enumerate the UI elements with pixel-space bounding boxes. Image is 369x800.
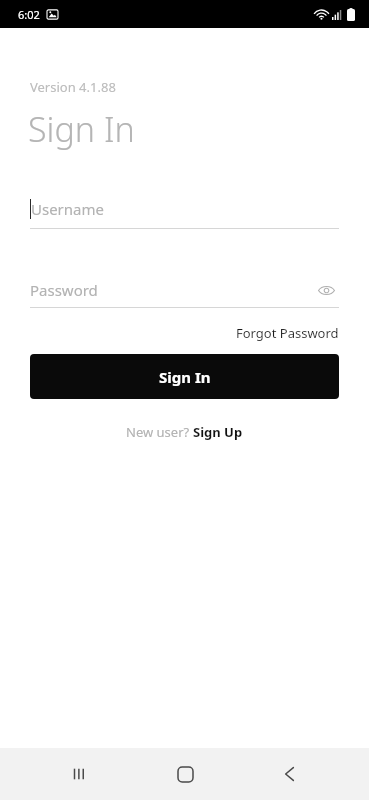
staticText: Username bbox=[31, 199, 104, 219]
staticText: 6:02 bbox=[18, 7, 40, 22]
button[interactable]: Show password bbox=[313, 277, 339, 303]
staticText: New user? bbox=[126, 423, 193, 441]
button[interactable]: Recent apps bbox=[56, 750, 104, 798]
button[interactable]: Sign In bbox=[30, 354, 339, 399]
button[interactable]: Sign Up bbox=[193, 423, 243, 441]
button[interactable]: Password bbox=[30, 273, 339, 307]
staticText: Password bbox=[30, 280, 98, 300]
button[interactable]: Username bbox=[30, 190, 339, 228]
staticText: Forgot Password bbox=[236, 324, 339, 342]
staticText: Version 4.1.88 bbox=[30, 78, 116, 96]
staticText: Sign In bbox=[28, 106, 135, 152]
staticText: Sign Up bbox=[193, 423, 243, 441]
staticText: Sign In bbox=[159, 367, 211, 387]
button[interactable]: Home bbox=[161, 750, 209, 798]
button[interactable]: Forgot Password bbox=[236, 324, 339, 342]
button[interactable]: Back bbox=[265, 750, 313, 798]
